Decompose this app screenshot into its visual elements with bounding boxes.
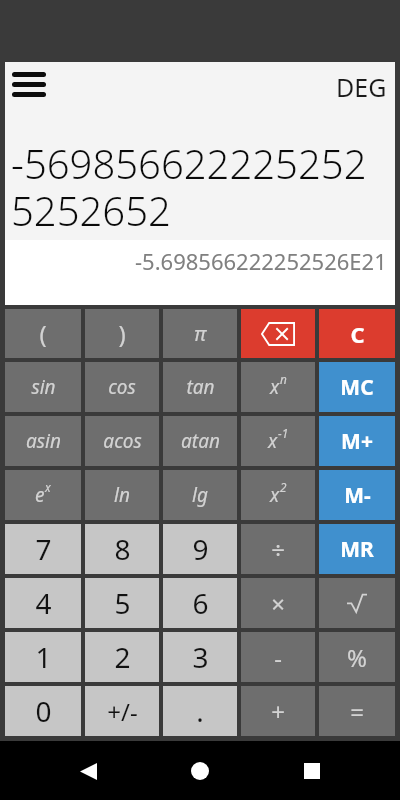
- staticText: C: [350, 319, 365, 349]
- button[interactable]: MC: [319, 362, 395, 412]
- staticText: +: [271, 695, 285, 728]
- staticText: M+: [341, 427, 373, 456]
- button[interactable]: x: [241, 362, 315, 412]
- button[interactable]: Home: [176, 747, 224, 795]
- button[interactable]: 3: [163, 632, 237, 682]
- button[interactable]: ÷: [241, 524, 315, 574]
- button[interactable]: 7: [5, 524, 81, 574]
- staticText: ln: [114, 482, 130, 508]
- staticText: +/-: [107, 695, 138, 728]
- button[interactable]: π: [163, 309, 237, 358]
- button[interactable]: 9: [163, 524, 237, 574]
- button[interactable]: Back: [64, 747, 112, 795]
- button[interactable]: Menu: [5, 62, 53, 106]
- button[interactable]: DEG: [336, 70, 387, 104]
- staticText: 4: [35, 584, 52, 622]
- staticText: (: [39, 317, 47, 350]
- button[interactable]: ): [85, 309, 159, 358]
- button[interactable]: C: [319, 309, 395, 358]
- staticText: M-: [344, 481, 371, 510]
- button[interactable]: ln: [85, 470, 159, 520]
- staticText: x: [270, 374, 280, 400]
- button[interactable]: 1: [5, 632, 81, 682]
- staticText: n: [280, 371, 287, 387]
- button[interactable]: tan: [163, 362, 237, 412]
- staticText: 6: [192, 584, 209, 622]
- staticText: 1: [35, 638, 52, 676]
- staticText: ): [118, 317, 126, 350]
- staticText: 0: [35, 692, 52, 730]
- button[interactable]: asin: [5, 416, 81, 466]
- staticText: =: [350, 695, 364, 728]
- staticText: tan: [186, 374, 215, 400]
- button[interactable]: Backspace: [241, 309, 315, 358]
- staticText: asin: [26, 428, 61, 454]
- staticText: -5.698566222252526E21: [135, 246, 387, 276]
- button[interactable]: 6: [163, 578, 237, 628]
- button[interactable]: Recent apps: [288, 747, 336, 795]
- staticText: 5: [114, 584, 131, 622]
- staticText: 9: [192, 530, 209, 568]
- button[interactable]: +: [241, 686, 315, 736]
- button[interactable]: e: [5, 470, 81, 520]
- staticText: -1: [278, 425, 289, 441]
- staticText: e: [35, 482, 45, 508]
- button[interactable]: 0: [5, 686, 81, 736]
- staticText: ×: [271, 587, 285, 620]
- button[interactable]: x: [241, 470, 315, 520]
- staticText: MC: [340, 373, 374, 402]
- button[interactable]: acos: [85, 416, 159, 466]
- staticText: sin: [31, 374, 56, 400]
- staticText: x: [270, 482, 280, 508]
- button[interactable]: 4: [5, 578, 81, 628]
- button[interactable]: 2: [85, 632, 159, 682]
- button[interactable]: %: [319, 632, 395, 682]
- button[interactable]: +/-: [85, 686, 159, 736]
- staticText: 3: [192, 638, 209, 676]
- button[interactable]: x: [241, 416, 315, 466]
- button[interactable]: sin: [5, 362, 81, 412]
- staticText: x: [268, 428, 278, 454]
- button[interactable]: lg: [163, 470, 237, 520]
- staticText: 2: [280, 479, 287, 495]
- button[interactable]: ×: [241, 578, 315, 628]
- staticText: ÷: [271, 533, 285, 566]
- staticText: acos: [103, 428, 142, 454]
- button[interactable]: [319, 578, 395, 628]
- staticText: π: [194, 320, 206, 347]
- button[interactable]: -: [241, 632, 315, 682]
- staticText: MR: [340, 535, 374, 564]
- staticText: 2: [114, 638, 131, 676]
- button[interactable]: 5: [85, 578, 159, 628]
- staticText: cos: [108, 374, 136, 400]
- button[interactable]: MR: [319, 524, 395, 574]
- staticText: -: [274, 641, 282, 674]
- staticText: 7: [35, 530, 52, 568]
- staticText: .: [196, 692, 204, 730]
- staticText: -5698566222252525252652: [11, 136, 389, 238]
- button[interactable]: =: [319, 686, 395, 736]
- staticText: atan: [181, 428, 220, 454]
- staticText: %: [347, 641, 367, 674]
- staticText: x: [45, 479, 51, 495]
- button[interactable]: .: [163, 686, 237, 736]
- button[interactable]: M-: [319, 470, 395, 520]
- staticText: 8: [114, 530, 131, 568]
- button[interactable]: M+: [319, 416, 395, 466]
- button[interactable]: atan: [163, 416, 237, 466]
- button[interactable]: (: [5, 309, 81, 358]
- button[interactable]: cos: [85, 362, 159, 412]
- button[interactable]: 8: [85, 524, 159, 574]
- staticText: lg: [192, 482, 208, 508]
